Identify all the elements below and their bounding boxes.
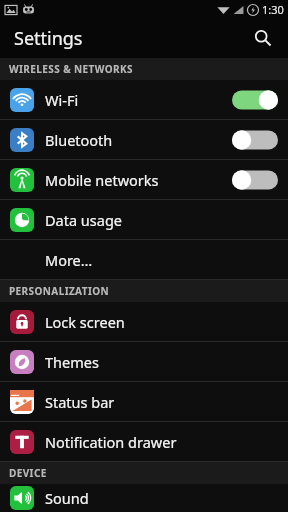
button[interactable]: More…	[0, 240, 288, 279]
staticText: PERSONALIZATION	[9, 284, 110, 298]
button[interactable]: Mobile networks	[0, 160, 288, 199]
staticText: Data usage	[45, 210, 278, 230]
staticText: DEVICE	[9, 466, 47, 480]
staticText: Sound	[45, 488, 278, 508]
staticText: Wi-Fi	[45, 90, 232, 110]
button[interactable]: Toggle off	[232, 129, 278, 151]
button[interactable]: Data usage	[0, 200, 288, 239]
button[interactable]: Lock screen	[0, 302, 288, 341]
button[interactable]: Bluetooth	[0, 120, 288, 159]
staticText: Themes	[45, 352, 278, 372]
button[interactable]: Search	[246, 21, 280, 55]
button[interactable]: Sound	[0, 484, 288, 512]
staticText: Status bar	[45, 392, 278, 412]
staticText: More…	[45, 250, 278, 270]
button[interactable]: Toggle on	[232, 89, 278, 111]
button[interactable]: Notification drawer	[0, 422, 288, 461]
staticText: WIRELESS & NETWORKS	[9, 62, 133, 76]
staticText: Settings	[14, 26, 83, 51]
staticText: 1:30	[262, 2, 284, 17]
staticText: Lock screen	[45, 312, 278, 332]
staticText: Notification drawer	[45, 432, 278, 452]
staticText: Mobile networks	[45, 170, 232, 190]
staticText: Bluetooth	[45, 130, 232, 150]
button[interactable]: Themes	[0, 342, 288, 381]
button[interactable]: Wi-Fi	[0, 80, 288, 119]
button[interactable]: Status bar	[0, 382, 288, 421]
button[interactable]: Toggle off	[232, 169, 278, 191]
